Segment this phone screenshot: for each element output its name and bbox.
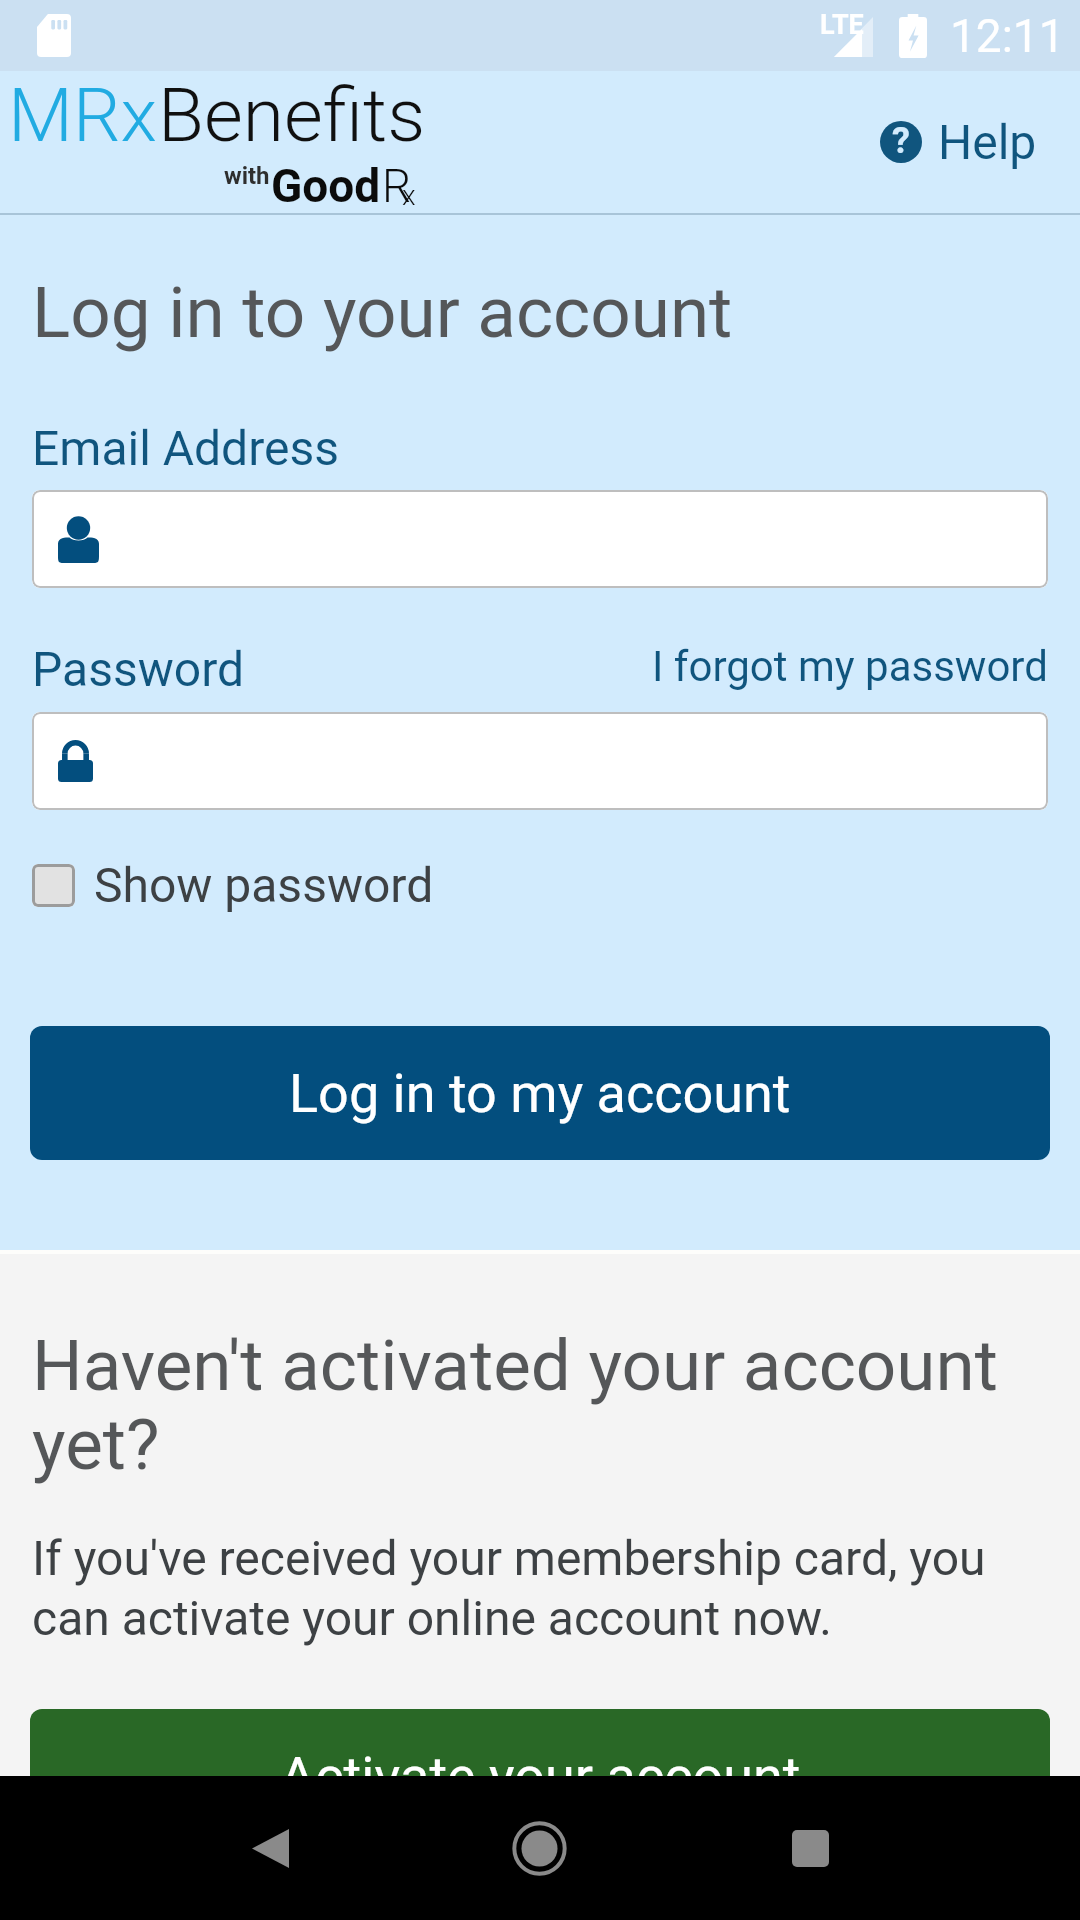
staticText: Log in to your account (32, 271, 733, 354)
button[interactable]: Activate your account (30, 1709, 1050, 1843)
staticText: 12:11 (950, 9, 1065, 63)
staticText: Password (32, 641, 245, 697)
staticText: Email Address (32, 420, 340, 476)
staticText: Activate your account (280, 1745, 801, 1808)
staticText: Show password (94, 857, 434, 913)
staticText: Good (271, 159, 381, 213)
staticText: Benefits (158, 71, 426, 159)
button[interactable]: Home (479, 1788, 599, 1908)
button[interactable] (32, 490, 1048, 588)
staticText: If you've received your membership card,… (32, 1530, 992, 1647)
staticText: MRx (8, 71, 158, 159)
button[interactable] (32, 712, 1048, 810)
button[interactable]: Recents (750, 1788, 870, 1908)
button[interactable]: Show password (32, 857, 434, 913)
button[interactable]: I forgot my password (652, 642, 1048, 691)
staticText: with (224, 162, 270, 190)
staticText: x (402, 179, 416, 212)
staticText: Log in to my account (289, 1062, 791, 1125)
button[interactable]: ? (880, 114, 1037, 170)
staticText: R (382, 159, 412, 213)
staticText: LTE (820, 9, 864, 41)
button[interactable]: Log in to my account (30, 1026, 1050, 1160)
staticText: ? (892, 120, 910, 162)
staticText: Haven't activated your account yet? (32, 1324, 1007, 1486)
staticText: Help (938, 114, 1037, 170)
button[interactable]: Back (210, 1788, 330, 1908)
